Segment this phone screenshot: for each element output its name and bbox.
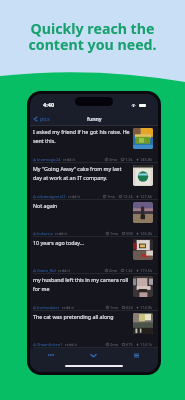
staticText: I asked my friend if he got his raise. H… — [33, 128, 133, 145]
staticText: 114.1k — [140, 342, 153, 347]
staticText: 2mo — [110, 342, 119, 347]
staticText: Not again — [33, 202, 133, 209]
staticText: redd.it — [65, 342, 77, 347]
staticText: My "Going Away" cake from my last day at… — [33, 165, 133, 182]
button[interactable]: My "Going Away" cake from my last day at… — [30, 163, 158, 200]
staticText: 4:40 — [43, 101, 55, 109]
button[interactable]: Not again — [30, 200, 158, 237]
staticText: 1mo — [110, 305, 119, 310]
staticText: Shaanlichen1 — [37, 342, 63, 347]
staticText: learmagic24 — [37, 157, 61, 162]
staticText: redd.it — [55, 231, 67, 236]
button[interactable]: I asked my friend if he got his raise. H… — [30, 126, 158, 163]
staticText: 127.6k — [140, 194, 153, 199]
staticText: Gwen_Kid — [37, 268, 56, 273]
staticText: 12.2k — [123, 194, 133, 199]
button[interactable]: More options — [30, 348, 72, 362]
staticText: bonhoibeet — [37, 305, 60, 310]
button[interactable]: my husband left this in my camera roll f… — [30, 274, 158, 311]
button[interactable]: pics — [30, 115, 54, 122]
button[interactable]: Collapse — [72, 348, 115, 362]
button[interactable]: Menu — [115, 348, 158, 362]
staticText: 126.0k — [140, 231, 153, 236]
staticText: redd.it — [62, 305, 74, 310]
staticText: redd.it — [63, 157, 75, 162]
staticText: ultramagnet23 — [37, 194, 66, 199]
staticText: 675 — [126, 342, 133, 347]
staticText: 145.8k — [140, 157, 153, 162]
staticText: 3mo — [109, 157, 118, 162]
staticText: The cat was pretending all along — [33, 313, 133, 320]
button[interactable]: The cat was pretending all along — [30, 311, 158, 348]
staticText: pics — [40, 115, 50, 122]
staticText: redd.it — [68, 194, 80, 199]
staticText: redd.it — [58, 268, 70, 273]
staticText: 1.3k — [125, 157, 133, 162]
staticText: 624 — [126, 305, 133, 310]
staticText: 508 — [126, 231, 133, 236]
staticText: 114.0k — [140, 305, 153, 310]
staticText: 10 years ago today... — [33, 239, 133, 246]
staticText: my husband left this in my camera roll f… — [33, 276, 133, 293]
staticText: 1.2k — [125, 268, 133, 273]
staticText: Quickly reach the content you need. — [28, 19, 157, 55]
staticText: 1mo — [107, 194, 116, 199]
staticText: 1mo — [110, 231, 119, 236]
button[interactable]: 10 years ago today... — [30, 237, 158, 274]
staticText: 119.5k — [140, 268, 153, 273]
staticText: 2mo — [109, 268, 118, 273]
staticText: funny — [87, 115, 102, 122]
staticText: kokoroa — [37, 231, 53, 236]
